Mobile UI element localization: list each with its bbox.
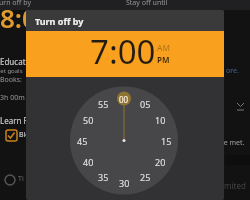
staticText: 7:00 [90,29,156,74]
button[interactable]: 55 [91,97,115,111]
staticText: Ti [18,174,24,184]
button[interactable]: 10 [148,113,172,127]
staticText: Books: [0,75,22,85]
button[interactable]: 50 [76,113,100,127]
staticText: 40 [83,156,94,168]
staticText: Set goals [0,67,23,75]
staticText: 55 [98,98,109,110]
staticText: Stay off until [126,0,168,8]
staticText: Learn First [0,115,40,126]
button[interactable]: 20 [148,155,172,169]
staticText: imited [222,180,246,191]
button[interactable]: 15 [154,134,178,148]
staticText: 10 [155,114,166,126]
button[interactable]: 45 [70,134,94,148]
staticText: 45 [77,135,88,147]
button[interactable]: Turn off by [26,10,224,31]
staticText: Blo [19,130,30,140]
staticText: 3h 00m [0,93,25,103]
staticText: 00 [119,94,129,105]
staticText: 30 [119,177,130,189]
staticText: 50 [83,114,94,126]
button[interactable]: 00 [112,92,136,106]
button[interactable]: AM [157,42,170,53]
staticText: ore. [226,66,239,76]
button[interactable]: 05 [133,97,157,111]
button[interactable]: 40 [76,155,100,169]
staticText: Turn off by [35,15,84,27]
staticText: 8:00 [0,0,52,35]
button[interactable]: 25 [133,170,157,184]
staticText: 25 [140,171,151,183]
staticText: 20 [155,156,166,168]
button[interactable]: 30 [112,176,136,190]
staticText: re met. [221,138,245,148]
staticText: 35 [98,171,109,183]
button[interactable]: PM [157,54,170,65]
staticText: 05 [140,98,151,110]
button[interactable]: 35 [91,170,115,184]
staticText: Educational [0,56,44,67]
staticText: 15 [161,135,172,147]
staticText: urn off by [0,0,31,8]
